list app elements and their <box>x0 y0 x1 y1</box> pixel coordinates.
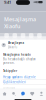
button[interactable]: Shortcut C <box>19 33 27 39</box>
button[interactable]: Mesajlaşma <box>0 40 46 49</box>
staticText: @xiaofu <box>8 45 18 49</box>
button[interactable]: Profile <box>37 89 46 98</box>
button[interactable]: Shortcut B <box>11 33 19 39</box>
button[interactable]: Activity <box>28 89 37 98</box>
staticText: Sürüm 12.4 · Xiaofu <box>3 87 15 89</box>
staticText: Takipçiler <box>3 69 17 73</box>
button[interactable]: Shortcut D <box>27 33 35 39</box>
staticText: Gizlilik tercihleri <box>3 80 26 84</box>
staticText: Mesajlaşma hesabı <box>3 53 31 56</box>
button[interactable]: Hesap ayarlarını düzenle <box>0 75 46 80</box>
staticText: Mesajlaşma <box>8 41 25 45</box>
button[interactable]: Gizlilik tercihleri <box>0 80 46 85</box>
button[interactable]: Shortcut E <box>35 33 43 39</box>
button[interactable]: Messages <box>18 89 28 98</box>
button[interactable]: Home <box>0 89 9 98</box>
staticText: Bu hesaba bağlı cihazları yönetin. <box>3 58 36 65</box>
staticText: 9:41 <box>4 0 11 5</box>
staticText: Mesajlaşma Xiaofu <box>4 16 36 30</box>
button[interactable]: Shortcut A <box>2 33 11 39</box>
staticText: Hesap ayarlarını düzenle <box>3 75 36 79</box>
button[interactable]: Search <box>9 89 18 98</box>
